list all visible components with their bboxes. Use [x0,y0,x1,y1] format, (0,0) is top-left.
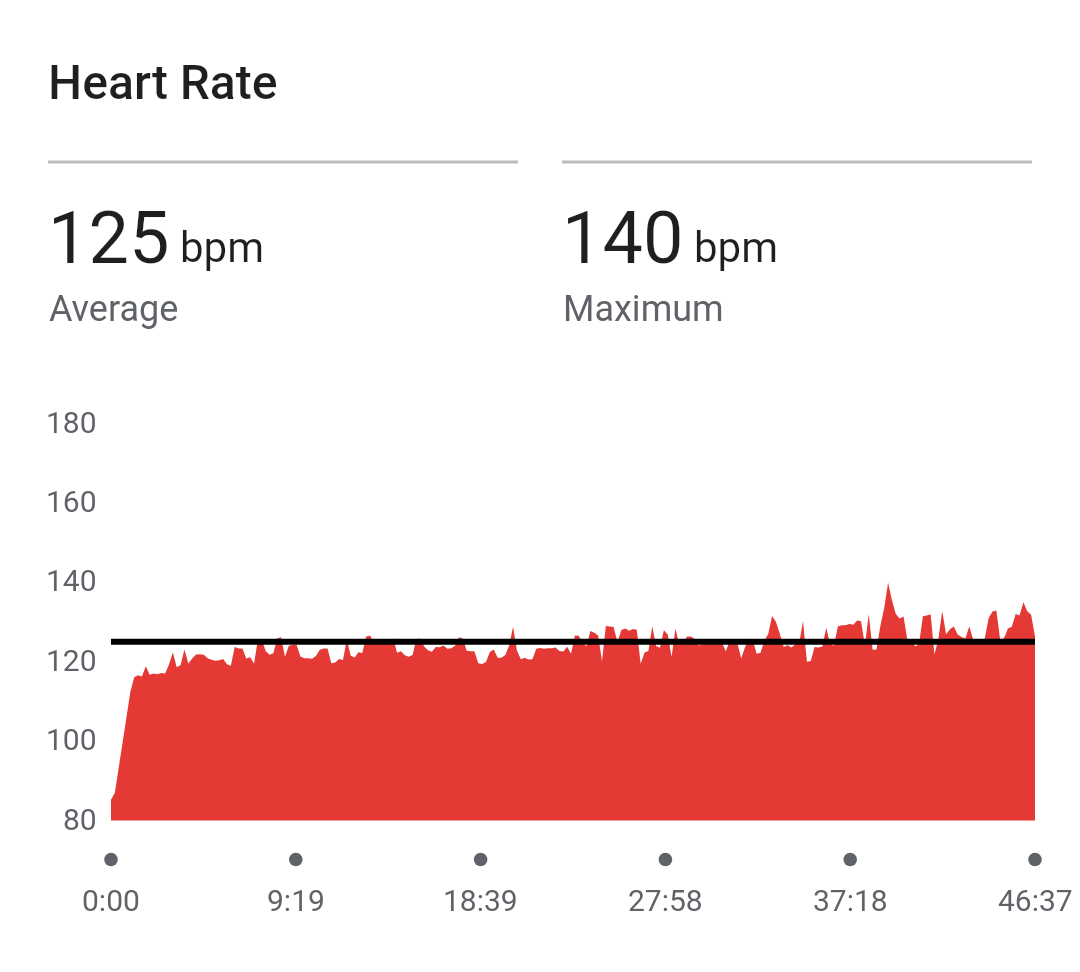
staticText: 0:00 [82,883,140,918]
button[interactable]: 125 [48,158,518,334]
staticText: Average [49,288,179,330]
staticText: bpm [694,223,778,272]
staticText: 80 [63,802,97,837]
staticText: Heart Rate [48,54,278,110]
staticText: 180 [46,405,97,440]
staticText: bpm [180,223,264,272]
staticText: 46:37 [998,883,1073,918]
staticText: 120 [46,643,97,678]
staticText: 18:39 [443,883,518,918]
staticText: 37:18 [813,883,888,918]
staticText: 140 [562,196,684,280]
button[interactable]: 140 [562,158,1032,334]
staticText: 160 [46,484,97,519]
staticText: 100 [46,722,97,757]
button[interactable]: Heart rate graph, 0:00 to 46:37 [48,380,1048,840]
staticText: 9:19 [267,883,325,918]
staticText: 140 [46,563,97,598]
staticText: Maximum [563,288,724,330]
staticText: 27:58 [628,883,703,918]
staticText: 125 [48,196,170,280]
